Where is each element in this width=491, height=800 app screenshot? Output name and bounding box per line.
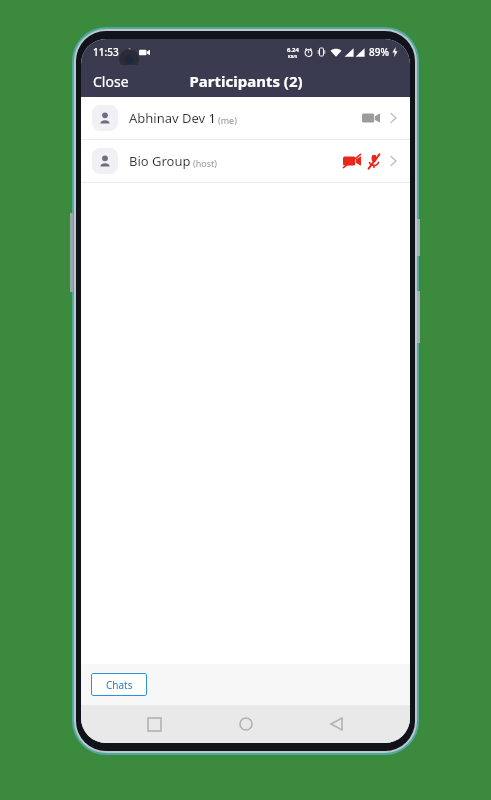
button[interactable]: Video on bbox=[360, 110, 382, 126]
staticText: KB/S bbox=[288, 54, 298, 59]
staticText: Abhinav Dev 1 bbox=[129, 109, 216, 127]
button[interactable]: Bio Group bbox=[81, 140, 410, 182]
button[interactable]: Video off bbox=[341, 153, 363, 169]
button[interactable]: Chats bbox=[91, 673, 147, 696]
button[interactable]: More details bbox=[388, 153, 399, 169]
button[interactable]: Recents bbox=[138, 708, 171, 741]
staticText: (me) bbox=[218, 114, 237, 126]
staticText: 6.24 bbox=[287, 46, 299, 54]
button[interactable]: Abhinav Dev 1 bbox=[81, 97, 410, 139]
button[interactable]: Back bbox=[320, 707, 353, 741]
staticText: 89% bbox=[369, 45, 389, 59]
staticText: Close bbox=[93, 72, 129, 91]
staticText: Chats bbox=[106, 678, 133, 692]
button[interactable]: Close bbox=[81, 68, 141, 95]
button[interactable]: More details bbox=[388, 110, 399, 126]
staticText: Participants (2) bbox=[189, 71, 303, 91]
staticText: Bio Group bbox=[129, 152, 191, 170]
staticText: (host) bbox=[193, 157, 217, 169]
button[interactable]: Microphone muted bbox=[366, 152, 382, 171]
button[interactable]: Home bbox=[229, 707, 263, 741]
staticText: 11:53 bbox=[93, 45, 119, 59]
